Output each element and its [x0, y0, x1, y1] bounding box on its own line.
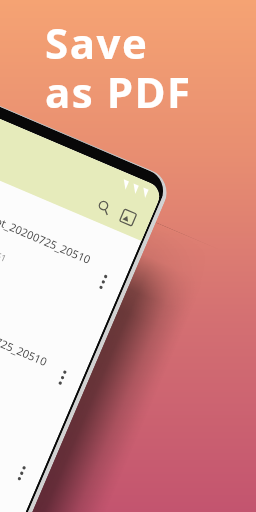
- button[interactable]: More options: [43, 357, 82, 397]
- button[interactable]: More options: [2, 453, 42, 492]
- staticText: Screenshot_20200725_205100: [0, 195, 98, 283]
- staticText: Save: [45, 14, 149, 71]
- button[interactable]: More options: [0, 352, 60, 512]
- staticText: 25.07.2020 20:51: [0, 225, 9, 264]
- button[interactable]: More options: [84, 262, 123, 301]
- button[interactable]: Screenshot_20200725_205100: [0, 161, 141, 337]
- button[interactable]: Search: [87, 190, 121, 224]
- staticText: Screenshot_20200725_205100.pdf: [0, 297, 55, 385]
- button[interactable]: Screenshot_20200725_205100.pdf: [0, 256, 101, 432]
- button[interactable]: Gallery: [111, 200, 145, 234]
- staticText: as PDF: [45, 63, 192, 120]
